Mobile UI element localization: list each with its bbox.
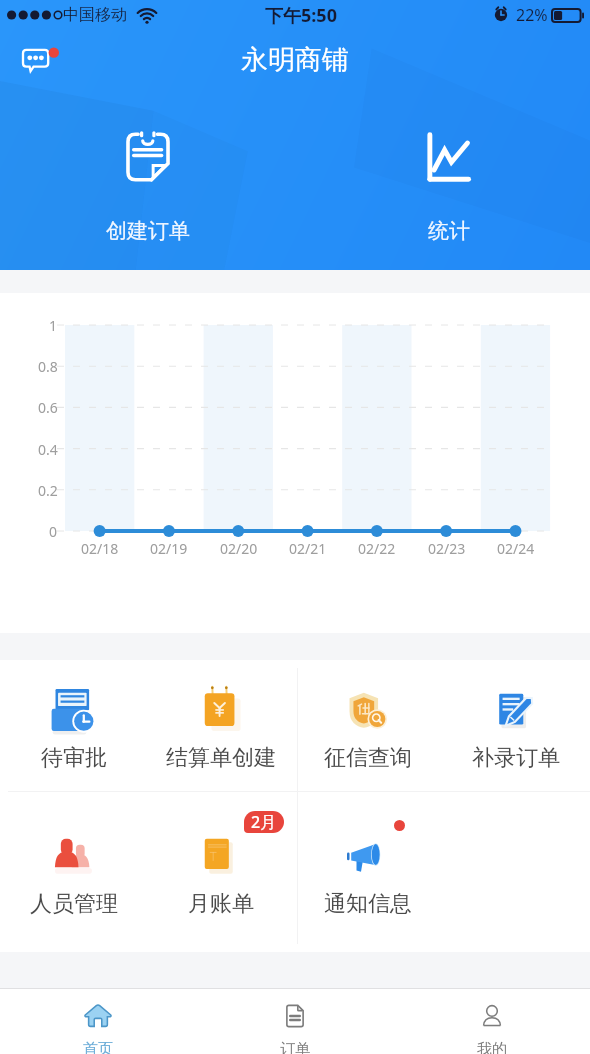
button[interactable]: 2月	[147, 806, 294, 862]
staticText: 02/24	[497, 539, 535, 558]
staticText: 1	[49, 316, 58, 335]
staticText: 02/21	[289, 539, 327, 558]
button[interactable]: 创建订单	[0, 132, 295, 244]
staticText: 2月	[251, 811, 277, 833]
staticText: 永明商铺	[241, 43, 349, 77]
staticText: 月账单	[188, 890, 254, 918]
staticText: 通知信息	[324, 890, 412, 918]
staticText: 0.4	[38, 440, 58, 459]
staticText: 征信查询	[324, 744, 412, 772]
staticText: 补录订单	[472, 744, 560, 772]
staticText: 02/18	[81, 539, 119, 558]
button[interactable]: 结算单创建	[147, 660, 294, 716]
button[interactable]: 补录订单	[442, 660, 590, 716]
staticText: 0.8	[38, 357, 58, 376]
staticText: 结算单创建	[166, 744, 276, 772]
staticText: 0.6	[38, 398, 58, 417]
staticText: 中国移动	[63, 5, 127, 25]
button[interactable]: 订单	[196, 989, 393, 1017]
button[interactable]: 征信查询	[294, 660, 442, 716]
staticText: 人员管理	[30, 890, 118, 918]
staticText: 02/20	[220, 539, 258, 558]
button[interactable]: 统计	[301, 132, 590, 244]
staticText: 订单	[280, 1040, 310, 1054]
staticText: 创建订单	[106, 218, 190, 244]
staticText: 02/19	[150, 539, 188, 558]
button[interactable]: 首页	[0, 989, 196, 1017]
staticText: 统计	[428, 218, 470, 244]
button[interactable]: Messages	[15, 34, 67, 86]
staticText: 0.2	[38, 481, 58, 500]
staticText: 首页	[83, 1040, 113, 1054]
staticText: 下午5:50	[265, 3, 337, 28]
button[interactable]: 人员管理	[0, 806, 147, 862]
staticText: 我的	[477, 1040, 507, 1054]
staticText: 待审批	[41, 744, 107, 772]
staticText: 02/22	[358, 539, 396, 558]
button[interactable]: 通知信息	[294, 806, 442, 862]
staticText: 02/23	[428, 539, 466, 558]
button[interactable]: 待审批	[0, 660, 147, 716]
staticText: 0	[49, 522, 58, 541]
button[interactable]: 我的	[393, 989, 590, 1017]
staticText: 22%	[516, 4, 548, 26]
